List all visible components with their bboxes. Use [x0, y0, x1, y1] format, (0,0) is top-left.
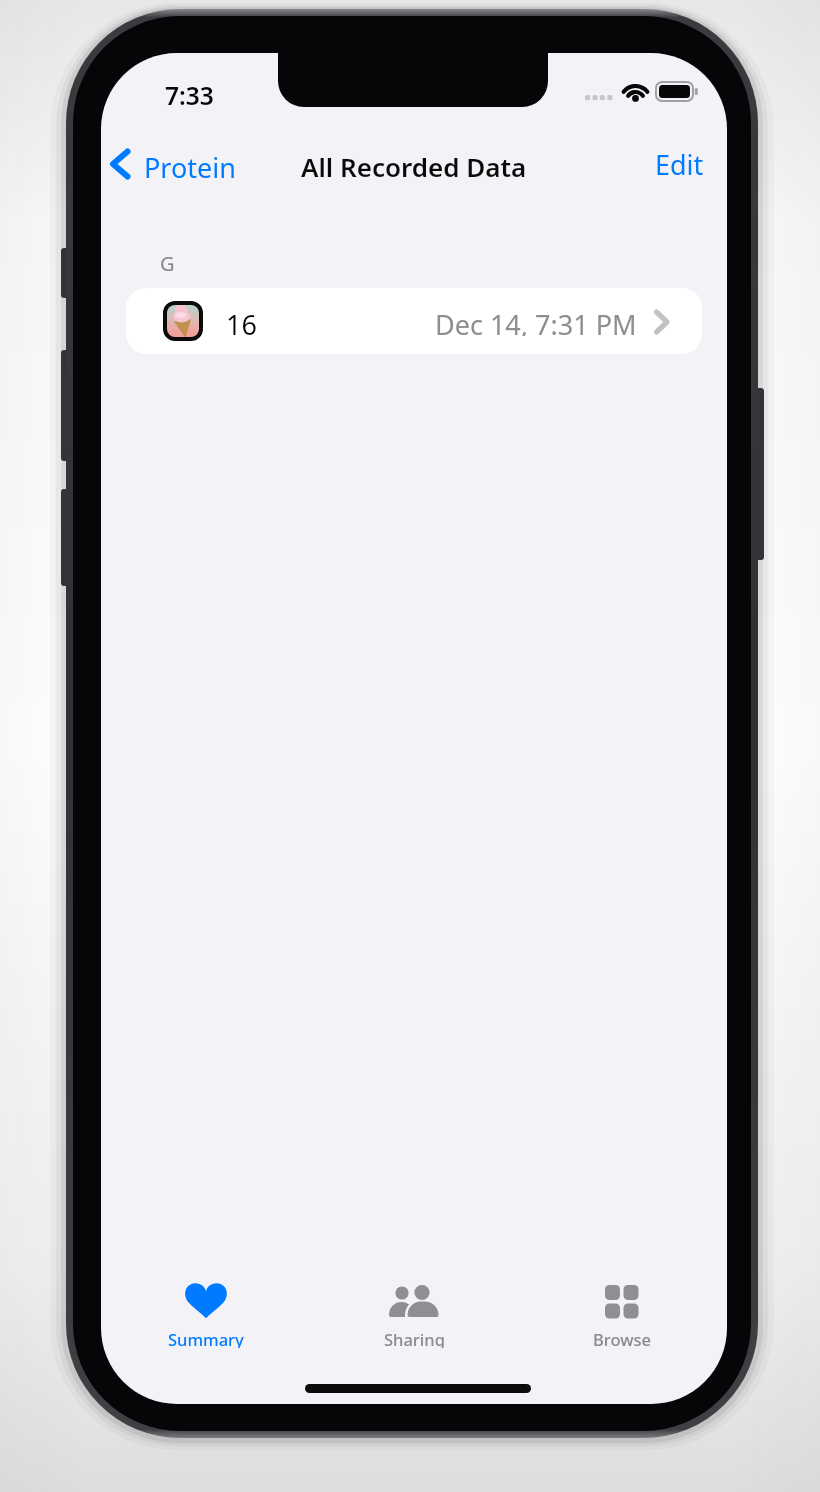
button[interactable]: Browse — [547, 1274, 697, 1352]
button[interactable]: Edit — [614, 146, 704, 182]
staticText: 16 — [226, 306, 257, 336]
button[interactable]: Sharing — [339, 1274, 489, 1352]
staticText: Dec 14, 7:31 PM — [435, 306, 637, 336]
staticText: Protein — [144, 149, 236, 179]
button[interactable]: 16 — [126, 288, 702, 354]
staticText: 7:33 — [165, 79, 214, 107]
button[interactable]: Protein — [104, 142, 244, 186]
staticText: Sharing — [384, 1328, 445, 1348]
button[interactable]: Summary — [131, 1274, 281, 1352]
staticText: Summary — [168, 1328, 244, 1348]
staticText: All Recorded Data — [301, 149, 527, 179]
staticText: G — [160, 250, 175, 272]
staticText: Edit — [655, 146, 704, 182]
staticText: Browse — [593, 1328, 651, 1348]
